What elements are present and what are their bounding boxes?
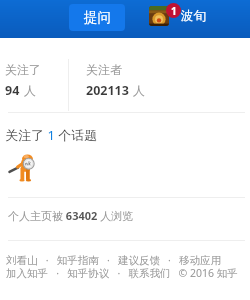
- button[interactable]: Topic: [8, 149, 41, 185]
- button[interactable]: 刘看山 · 知乎指南 · 建议反馈 · 移动应用: [6, 253, 222, 267]
- button[interactable]: 关注了: [5, 62, 41, 99]
- other: Profile avatar: [149, 6, 169, 26]
- staticText: 94: [5, 82, 20, 99]
- staticText: 关注了 1 个话题: [5, 126, 98, 144]
- staticText: 人: [24, 83, 36, 98]
- staticText: 加入知乎 · 知乎协议 · 联系我们 © 2016 知乎: [6, 266, 238, 280]
- staticText: 个人主页被 63402 人浏览: [8, 208, 134, 223]
- button[interactable]: Profile avatar: [149, 6, 206, 26]
- staticText: 提问: [84, 9, 111, 26]
- staticText: 人: [133, 83, 145, 98]
- staticText: 波旬: [181, 8, 206, 24]
- button[interactable]: 关注了 1 个话题: [5, 126, 98, 144]
- staticText: 刘看山 · 知乎指南 · 建议反馈 · 移动应用: [6, 253, 222, 267]
- staticText: 202113: [86, 82, 129, 99]
- button[interactable]: 加入知乎 · 知乎协议 · 联系我们 © 2016 知乎: [6, 266, 238, 280]
- other: Topic: [8, 149, 41, 185]
- staticText: 关注了: [5, 62, 41, 77]
- button[interactable]: 提问: [69, 4, 125, 31]
- staticText: 1: [171, 4, 177, 18]
- button[interactable]: 关注者: [86, 62, 145, 99]
- button[interactable]: 1 notification: [166, 3, 181, 18]
- staticText: 关注者: [86, 62, 122, 77]
